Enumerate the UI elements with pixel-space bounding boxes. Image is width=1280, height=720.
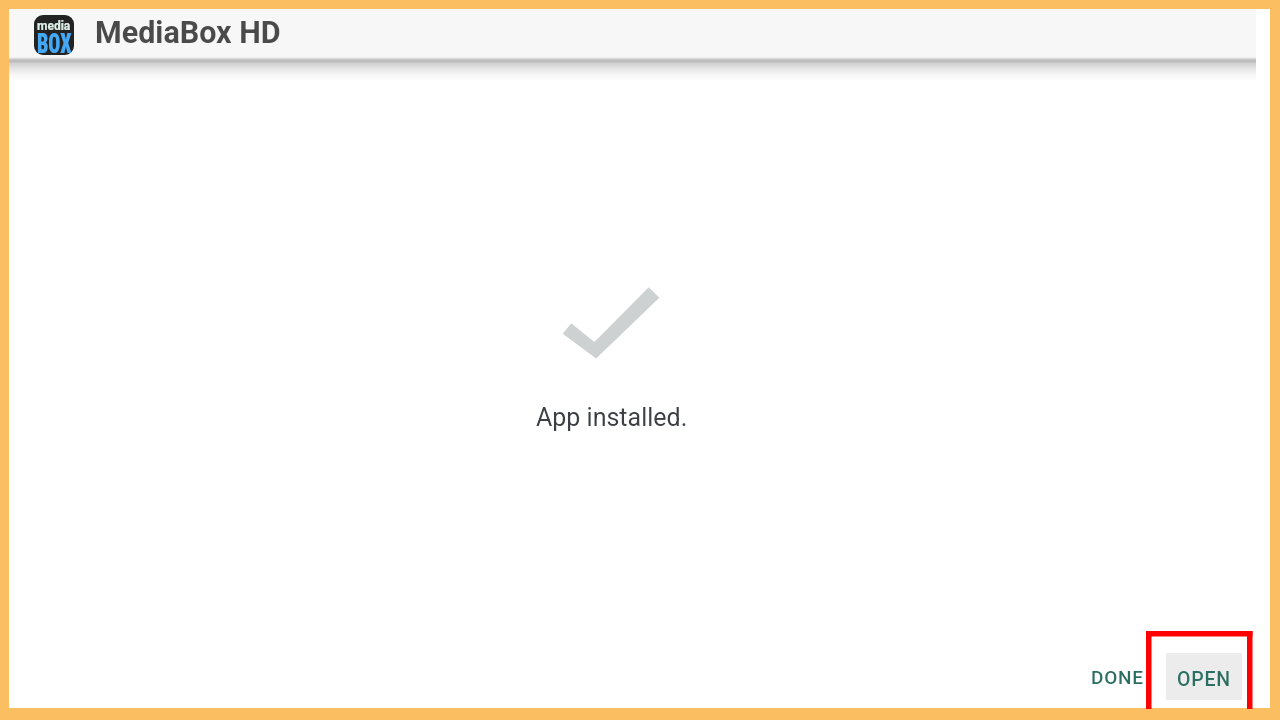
staticText: DONE: [1091, 666, 1144, 688]
other: MediaBox HD app icon: [34, 15, 74, 55]
staticText: media: [37, 19, 71, 33]
staticText: MediaBox HD: [95, 15, 281, 51]
button[interactable]: OPEN: [1166, 653, 1242, 700]
staticText: App installed.: [536, 403, 688, 432]
staticText: OPEN: [1177, 668, 1231, 691]
button[interactable]: DONE: [1077, 653, 1157, 700]
staticText: BOX: [37, 28, 72, 55]
